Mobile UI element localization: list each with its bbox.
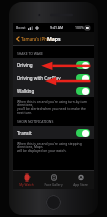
button[interactable]: Face Gallery	[40, 171, 67, 189]
staticText: Driving	[17, 62, 76, 68]
staticText: 9:41 AM	[50, 25, 64, 30]
button[interactable]: Home	[46, 195, 61, 210]
button[interactable]: Transit toggle	[76, 129, 90, 137]
staticText: Face Gallery	[44, 183, 63, 187]
button[interactable]: Driving with CarPlay toggle	[76, 74, 90, 82]
staticText: SHOW NOTIFICATIONS	[17, 119, 54, 124]
button[interactable]: Driving toggle	[76, 61, 90, 69]
staticText: App Store	[73, 183, 88, 187]
staticText: SHAKE TO WAKE	[17, 51, 43, 56]
staticText: Boost	[16, 25, 26, 30]
staticText: Walking	[17, 88, 76, 94]
button[interactable]: Walking	[13, 84, 94, 97]
button[interactable]: Transit	[13, 126, 94, 139]
button[interactable]: Walking toggle	[76, 87, 90, 95]
staticText: When this is on and you're using turn-by…	[17, 99, 90, 115]
staticText: Driving with CarPlay	[17, 75, 76, 81]
button[interactable]: Driving	[13, 58, 94, 71]
staticText: Maps	[47, 35, 61, 42]
staticText: Transit	[17, 130, 76, 136]
button[interactable]: My Watch	[13, 171, 40, 189]
button[interactable]: Driving with CarPlay	[13, 71, 94, 84]
button[interactable]: App Store	[67, 171, 94, 189]
staticText: Tamara's iPhone	[21, 36, 55, 42]
staticText: When this is on and you're using steppin…	[17, 141, 90, 153]
staticText: My Watch	[19, 183, 34, 187]
staticText: 100%	[75, 25, 84, 30]
button[interactable]: Tamara's iPhone	[15, 35, 56, 43]
